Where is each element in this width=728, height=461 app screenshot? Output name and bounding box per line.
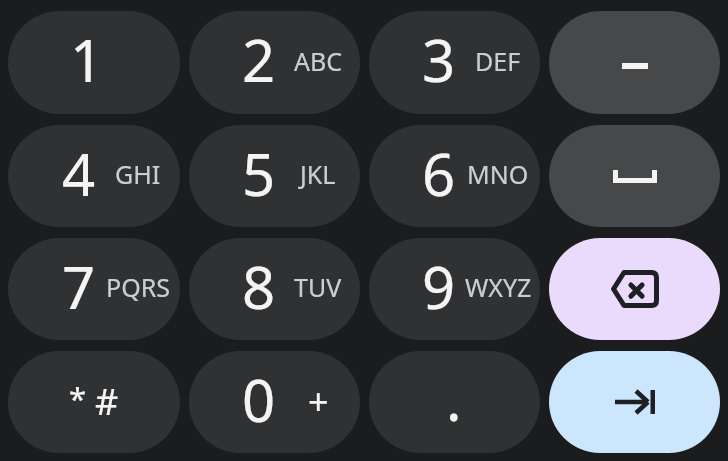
staticText: 5 [242,134,276,213]
staticText: JKL [300,157,336,191]
button[interactable]: 1 [8,11,180,114]
button[interactable]: 5 [189,125,360,227]
staticText: MNO [467,157,529,191]
staticText: 1 [70,20,104,99]
button[interactable]: 0 [189,351,360,453]
button[interactable]: Backspace [549,238,720,340]
staticText: WXYZ [465,270,532,304]
staticText: 4 [62,134,96,213]
staticText: # [95,377,119,426]
staticText: 7 [62,247,96,326]
staticText: PQRS [106,270,170,304]
staticText: 9 [422,247,456,326]
button[interactable]: . [369,351,540,453]
button[interactable]: 4 [8,125,180,227]
staticText: DEF [475,44,521,78]
staticText: TUV [294,270,342,304]
button[interactable]: Enter [549,351,720,453]
button[interactable]: Space [549,125,720,227]
staticText: 3 [422,20,456,99]
staticText: * [69,377,87,419]
staticText: . [446,359,462,438]
staticText: + [308,377,329,426]
staticText: 6 [422,134,456,213]
button[interactable]: 9 [369,238,540,340]
button[interactable]: 6 [369,125,540,227]
staticText: 0 [242,360,276,439]
button[interactable]: 3 [369,11,540,114]
button[interactable]: 8 [189,238,360,340]
staticText: ABC [294,44,343,78]
button[interactable]: * [8,351,180,453]
staticText: GHI [115,157,161,191]
staticText: 8 [242,247,276,326]
staticText: 2 [242,20,276,99]
button[interactable]: Dash [549,11,720,114]
button[interactable]: 2 [189,11,360,114]
button[interactable]: 7 [8,238,180,340]
